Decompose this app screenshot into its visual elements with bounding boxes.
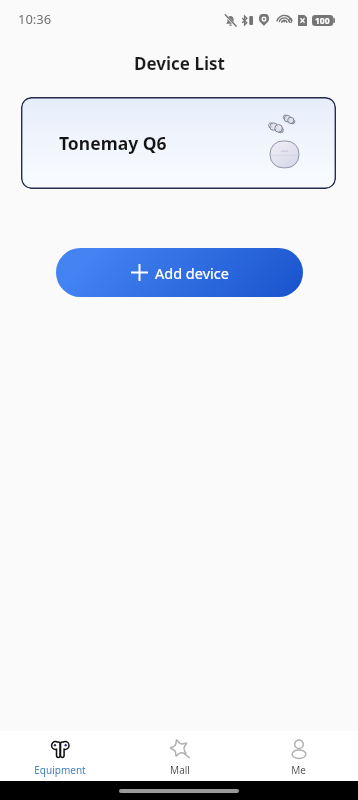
staticText: Add device bbox=[155, 263, 229, 283]
staticText: Tonemay Q6 bbox=[59, 131, 167, 155]
button[interactable]: Equipment bbox=[0, 731, 120, 781]
staticText: 10:36 bbox=[18, 10, 52, 28]
button[interactable]: Add device bbox=[56, 248, 303, 297]
button[interactable]: Tonemay Q6 bbox=[21, 97, 336, 189]
staticText: Device List bbox=[134, 52, 225, 75]
button[interactable]: Me bbox=[239, 731, 358, 781]
button[interactable]: Mall bbox=[120, 731, 239, 781]
staticText: Mall bbox=[170, 763, 190, 777]
staticText: Equipment bbox=[34, 763, 86, 777]
staticText: Me bbox=[291, 763, 306, 777]
staticText: 100 bbox=[315, 15, 330, 25]
